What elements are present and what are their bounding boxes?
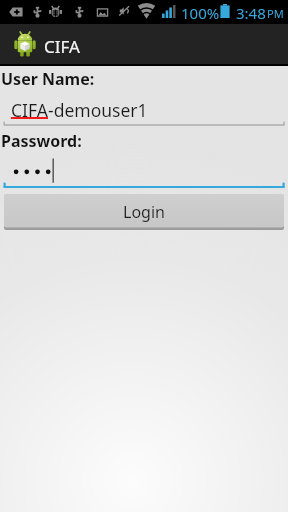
button[interactable]: App icon	[0, 24, 288, 64]
staticText: Login	[123, 201, 165, 223]
staticText: PM	[267, 6, 284, 21]
staticText: 100%	[181, 3, 220, 23]
button[interactable]: Login	[4, 194, 284, 230]
staticText: CIFA	[44, 35, 80, 58]
staticText: User Name:	[1, 68, 95, 90]
staticText: CIFA	[11, 98, 48, 122]
staticText: 3:48	[236, 3, 266, 23]
other: App icon	[14, 31, 36, 57]
staticText: Password:	[1, 130, 82, 152]
staticText: -demouser1	[48, 98, 148, 122]
